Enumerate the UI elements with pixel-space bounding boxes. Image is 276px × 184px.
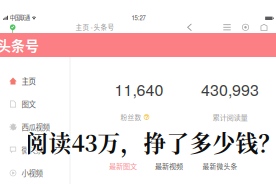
staticText: 最新图文	[109, 161, 137, 171]
staticText: 阅读43万，挣了多少钱？	[25, 125, 276, 157]
button[interactable]: Tabs	[221, 21, 233, 33]
staticText: 11,640	[114, 77, 163, 100]
button[interactable]: 微头条	[0, 142, 70, 158]
staticText: 主页 - 头条号	[75, 22, 114, 32]
button[interactable]: 小视频	[0, 165, 70, 181]
staticText: 阅读43万，挣了多少钱？	[24, 126, 276, 158]
staticText: 最新微头条	[202, 161, 237, 171]
staticText: 阅读43万，挣了多少钱？	[25, 126, 276, 158]
staticText: 阅读43万，挣了多少钱？	[27, 126, 276, 158]
button[interactable]: Reload	[239, 21, 251, 33]
button[interactable]: 最新微头条	[200, 160, 240, 172]
staticText: 主页	[21, 76, 35, 86]
staticText: 中国联通	[10, 14, 30, 21]
button[interactable]: Back	[183, 21, 195, 33]
staticText: 阅读43万，挣了多少钱？	[26, 125, 276, 157]
staticText: 西瓜视频	[21, 122, 49, 132]
button[interactable]: 最新视频	[152, 160, 186, 172]
button[interactable]: 西瓜视频	[0, 119, 70, 135]
staticText: 阅读43万，挣了多少钱？	[25, 127, 276, 159]
staticText: 累计阅读量	[212, 112, 247, 122]
staticText: 粉丝数	[121, 112, 142, 122]
staticText: 阅读43万，挣了多少钱？	[25, 125, 276, 157]
staticText: 头条号	[0, 35, 39, 55]
staticText: 阅读43万，挣了多少钱？	[26, 127, 276, 159]
staticText: 430,993	[201, 77, 259, 100]
staticText: 微头条	[21, 145, 42, 155]
staticText: ?	[144, 112, 148, 122]
staticText: 15:27	[131, 13, 145, 22]
staticText: 最新视频	[155, 161, 183, 171]
staticText: 小视频	[21, 168, 42, 178]
button[interactable]: 主页	[0, 73, 70, 89]
button[interactable]: Home	[258, 21, 270, 33]
staticText: 图文	[21, 99, 35, 109]
button[interactable]: 图文	[0, 96, 70, 112]
staticText: 阅读43万，挣了多少钱？	[25, 127, 276, 159]
button[interactable]: 最新图文	[106, 160, 140, 172]
